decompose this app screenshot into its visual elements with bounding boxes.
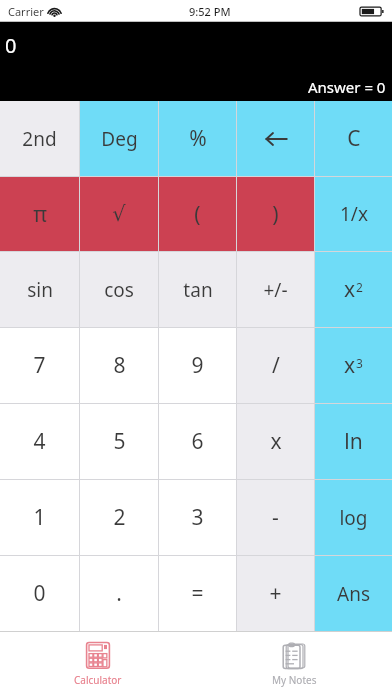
button[interactable]: ( — [159, 177, 236, 251]
staticText: . — [116, 579, 122, 608]
button[interactable]: Deg — [80, 101, 158, 176]
button[interactable]: . — [80, 556, 158, 631]
staticText: x — [344, 351, 356, 380]
staticText: Ans — [337, 581, 370, 607]
button[interactable]: 8 — [80, 328, 158, 403]
button[interactable]: + — [237, 556, 314, 631]
button[interactable]: sin — [0, 252, 79, 327]
staticText: log — [339, 505, 368, 531]
button[interactable]: log — [315, 480, 392, 555]
staticText: π — [33, 200, 47, 229]
staticText: 4 — [33, 427, 46, 456]
staticText: 9:52 PM — [189, 4, 231, 19]
other: Backspace — [261, 124, 291, 154]
staticText: - — [272, 503, 279, 532]
staticText: 1/x — [340, 201, 368, 227]
button[interactable]: ) — [237, 177, 314, 251]
button[interactable]: x — [237, 404, 314, 479]
button[interactable]: Ans — [315, 556, 392, 631]
staticText: 0 — [5, 32, 17, 59]
button[interactable]: cos — [80, 252, 158, 327]
staticText: % — [189, 124, 207, 153]
staticText: Calculator — [74, 673, 122, 687]
button[interactable]: 9 — [159, 328, 236, 403]
button[interactable]: 2 — [80, 480, 158, 555]
staticText: + — [269, 579, 282, 608]
staticText: x — [344, 275, 356, 304]
button[interactable]: x — [315, 252, 392, 327]
staticText: ) — [272, 200, 279, 229]
button[interactable]: ln — [315, 404, 392, 479]
staticText: My Notes — [272, 673, 317, 687]
button[interactable]: My Notes — [196, 631, 392, 696]
staticText: = — [191, 579, 204, 608]
staticText: 7 — [33, 351, 46, 380]
staticText: C — [347, 124, 361, 153]
staticText: ( — [194, 200, 201, 229]
staticText: √ — [112, 202, 126, 226]
staticText: 9 — [191, 351, 204, 380]
staticText: +/- — [263, 277, 288, 303]
staticText: 8 — [113, 351, 126, 380]
button[interactable]: π — [0, 177, 79, 251]
staticText: Carrier — [8, 4, 44, 19]
button[interactable]: 5 — [80, 404, 158, 479]
button[interactable]: Backspace — [237, 101, 314, 176]
staticText: 1 — [33, 503, 46, 532]
staticText: 0 — [33, 579, 46, 608]
staticText: 3 — [356, 355, 363, 371]
button[interactable]: Calculator — [0, 631, 196, 696]
button[interactable]: - — [237, 480, 314, 555]
staticText: 2 — [356, 279, 363, 295]
staticText: / — [272, 351, 280, 380]
button[interactable]: 0 — [0, 556, 79, 631]
button[interactable]: 1/x — [315, 177, 392, 251]
staticText: cos — [104, 277, 134, 303]
button[interactable]: / — [237, 328, 314, 403]
staticText: 3 — [191, 503, 204, 532]
button[interactable]: = — [159, 556, 236, 631]
staticText: 5 — [113, 427, 126, 456]
staticText: ln — [344, 427, 363, 456]
staticText: x — [270, 427, 282, 456]
staticText: sin — [27, 277, 53, 303]
button[interactable]: 7 — [0, 328, 79, 403]
button[interactable]: 3 — [159, 480, 236, 555]
button[interactable]: 4 — [0, 404, 79, 479]
button[interactable]: x — [315, 328, 392, 403]
button[interactable]: C — [315, 101, 392, 176]
staticText: Answer = 0 — [308, 77, 386, 97]
button[interactable]: % — [159, 101, 236, 176]
staticText: 6 — [191, 427, 204, 456]
button[interactable]: tan — [159, 252, 236, 327]
button[interactable]: 1 — [0, 480, 79, 555]
staticText: 2nd — [22, 126, 57, 152]
button[interactable]: 2nd — [0, 101, 79, 176]
staticText: Deg — [101, 126, 138, 152]
staticText: tan — [183, 277, 213, 303]
button[interactable]: √ — [80, 177, 158, 251]
button[interactable]: 6 — [159, 404, 236, 479]
staticText: 2 — [113, 503, 126, 532]
button[interactable]: +/- — [237, 252, 314, 327]
